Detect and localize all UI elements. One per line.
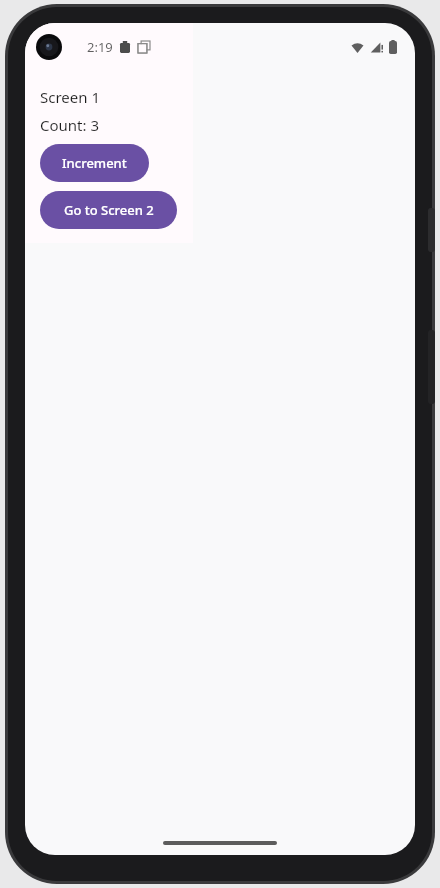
staticText: Count: 3: [40, 115, 100, 135]
staticText: Go to Screen 2: [64, 201, 154, 219]
staticText: Screen 1: [40, 87, 101, 107]
button[interactable]: Go to Screen 2: [40, 191, 177, 229]
button[interactable]: Increment: [40, 144, 149, 182]
staticText: 2:19: [87, 38, 113, 56]
staticText: Increment: [62, 154, 127, 172]
